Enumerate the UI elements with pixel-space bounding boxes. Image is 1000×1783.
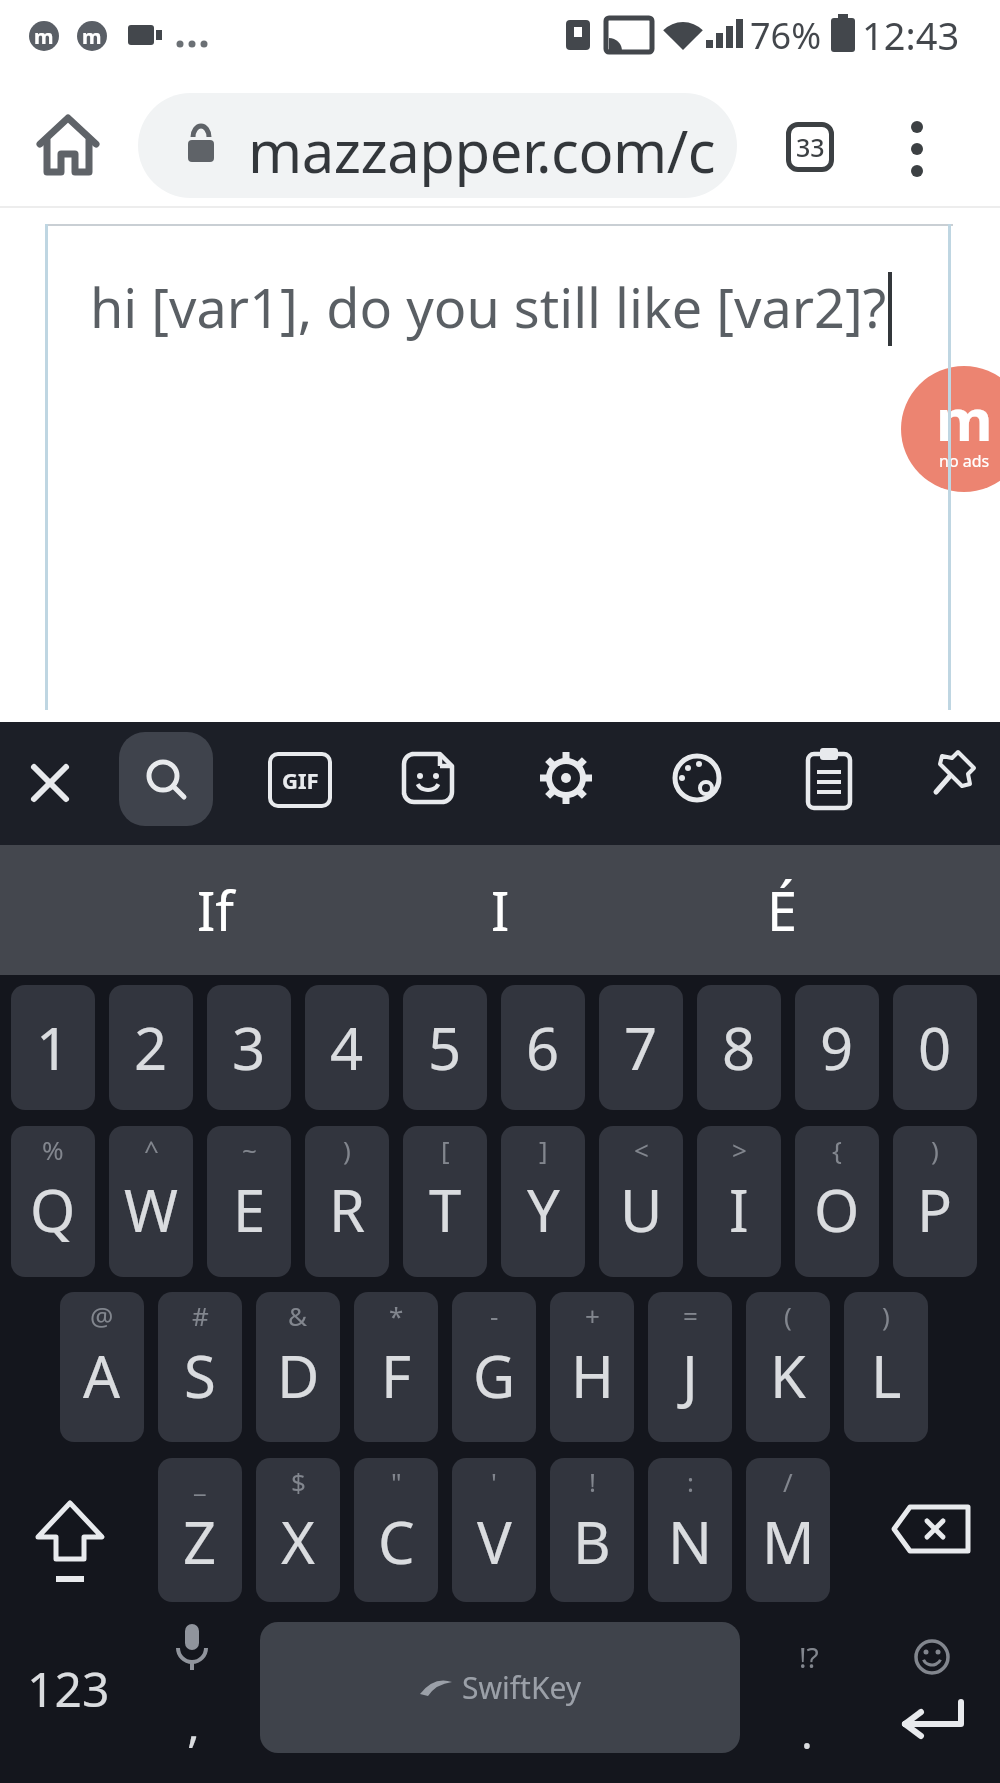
- button[interactable]: ,: [108, 1668, 278, 1778]
- staticText: 1: [36, 1008, 70, 1087]
- button[interactable]: (: [746, 1292, 830, 1442]
- staticText: 2: [134, 1008, 168, 1087]
- button[interactable]: 2: [109, 985, 193, 1110]
- staticText: m: [82, 23, 102, 50]
- button[interactable]: 5: [403, 985, 487, 1110]
- button[interactable]: [928, 748, 988, 808]
- button[interactable]: mazzapper.com/c: [138, 93, 737, 198]
- staticText: M: [762, 1502, 815, 1581]
- staticText: ,: [187, 1691, 200, 1756]
- button[interactable]: [22, 755, 78, 811]
- button[interactable]: If: [50, 845, 380, 975]
- button[interactable]: I: [335, 845, 665, 975]
- staticText: no ads: [939, 450, 990, 472]
- button[interactable]: [536, 748, 596, 808]
- button[interactable]: <: [599, 1126, 683, 1277]
- button[interactable]: *: [354, 1292, 438, 1442]
- button[interactable]: ": [354, 1458, 438, 1602]
- staticText: 123: [27, 1656, 110, 1721]
- button[interactable]: &: [256, 1292, 340, 1442]
- button[interactable]: [36, 112, 100, 176]
- button[interactable]: ': [452, 1458, 536, 1602]
- button[interactable]: .: [722, 1677, 892, 1783]
- staticText: I: [491, 873, 510, 947]
- staticText: GIF: [282, 765, 319, 795]
- staticText: 8: [722, 1008, 756, 1087]
- staticText: 7: [624, 1008, 658, 1087]
- button[interactable]: 4: [305, 985, 389, 1110]
- button[interactable]: _: [158, 1458, 242, 1602]
- button[interactable]: 6: [501, 985, 585, 1110]
- staticText: ~: [242, 1132, 257, 1167]
- button[interactable]: SwiftKey: [260, 1622, 740, 1753]
- staticText: 9: [820, 1008, 854, 1087]
- button[interactable]: !: [550, 1458, 634, 1602]
- button[interactable]: [: [403, 1126, 487, 1277]
- button[interactable]: $: [256, 1458, 340, 1602]
- button[interactable]: {: [795, 1126, 879, 1277]
- button[interactable]: GIF: [268, 752, 332, 808]
- staticText: @: [90, 1298, 114, 1333]
- staticText: +: [585, 1298, 600, 1333]
- button[interactable]: [166, 1620, 218, 1680]
- button[interactable]: ^: [109, 1126, 193, 1277]
- staticText: If: [197, 873, 234, 947]
- button[interactable]: =: [648, 1292, 732, 1442]
- button[interactable]: ~: [207, 1126, 291, 1277]
- button[interactable]: 9: [795, 985, 879, 1110]
- button[interactable]: [119, 732, 213, 826]
- button[interactable]: [20, 1495, 120, 1615]
- staticText: ': [491, 1464, 497, 1499]
- button[interactable]: 0: [893, 985, 977, 1110]
- button[interactable]: +: [550, 1292, 634, 1442]
- button[interactable]: m: [901, 366, 1000, 492]
- button[interactable]: @: [60, 1292, 144, 1442]
- button[interactable]: 8: [697, 985, 781, 1110]
- staticText: ): [882, 1298, 890, 1333]
- staticText: (: [784, 1298, 792, 1333]
- button[interactable]: !?: [724, 1602, 894, 1712]
- staticText: 0: [918, 1008, 952, 1087]
- button[interactable]: -: [452, 1292, 536, 1442]
- button[interactable]: [880, 1475, 980, 1595]
- button[interactable]: ]: [501, 1126, 585, 1277]
- staticText: G: [473, 1336, 516, 1415]
- staticText: P: [917, 1170, 953, 1249]
- staticText: E: [233, 1170, 266, 1249]
- button[interactable]: ): [305, 1126, 389, 1277]
- button[interactable]: 123: [0, 1633, 153, 1743]
- staticText: S: [184, 1336, 216, 1415]
- button[interactable]: >: [697, 1126, 781, 1277]
- button[interactable]: [895, 1700, 975, 1750]
- button[interactable]: 7: [599, 985, 683, 1110]
- staticText: O: [814, 1170, 860, 1249]
- button[interactable]: 3: [207, 985, 291, 1110]
- staticText: hi [var1], do you still like [var2]?: [90, 270, 887, 344]
- button[interactable]: /: [746, 1458, 830, 1602]
- staticText: <: [634, 1132, 649, 1167]
- staticText: :: [687, 1464, 694, 1499]
- staticText: F: [381, 1336, 412, 1415]
- button[interactable]: %: [11, 1126, 95, 1277]
- staticText: =: [683, 1298, 698, 1333]
- staticText: mazzapper.com/c: [248, 111, 716, 190]
- staticText: ): [931, 1132, 939, 1167]
- staticText: I: [729, 1170, 749, 1249]
- button[interactable]: [896, 116, 938, 182]
- button[interactable]: ): [893, 1126, 977, 1277]
- staticText: [: [441, 1132, 450, 1167]
- staticText: U: [620, 1170, 663, 1249]
- staticText: J: [682, 1336, 698, 1415]
- button[interactable]: ): [844, 1292, 928, 1442]
- staticText: m: [936, 379, 993, 458]
- button[interactable]: [400, 750, 458, 808]
- button[interactable]: [912, 1637, 952, 1677]
- staticText: ^: [144, 1132, 159, 1167]
- button[interactable]: É: [617, 845, 947, 975]
- button[interactable]: :: [648, 1458, 732, 1602]
- button[interactable]: 1: [11, 985, 95, 1110]
- button[interactable]: [804, 746, 856, 812]
- button[interactable]: #: [158, 1292, 242, 1442]
- button[interactable]: [668, 750, 728, 810]
- button[interactable]: 33: [786, 122, 834, 172]
